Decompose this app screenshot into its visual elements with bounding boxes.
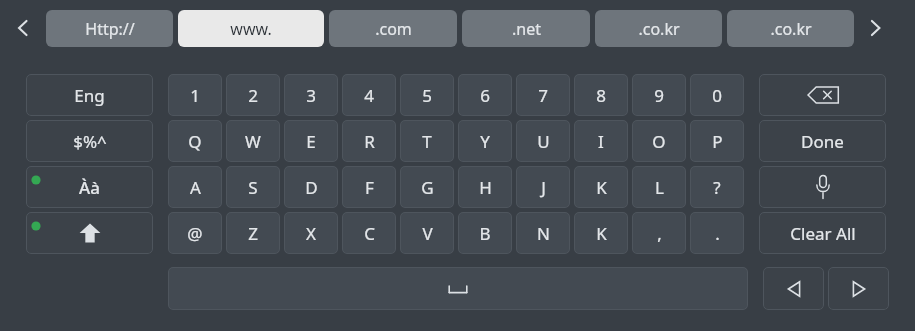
staticText: N xyxy=(537,222,550,245)
staticText: G xyxy=(421,176,434,199)
button[interactable]: 7 xyxy=(516,74,570,116)
button[interactable]: .co.kr xyxy=(727,10,854,47)
button[interactable]: Space xyxy=(168,267,748,310)
button[interactable]: Y xyxy=(458,120,512,162)
staticText: R xyxy=(364,130,375,153)
staticText: P xyxy=(712,130,723,153)
staticText: $%^ xyxy=(73,130,107,153)
button[interactable]: V xyxy=(400,212,454,254)
staticText: @ xyxy=(187,222,203,245)
staticText: A xyxy=(190,176,201,199)
staticText: X xyxy=(306,222,316,245)
button[interactable]: U xyxy=(516,120,570,162)
staticText: V xyxy=(422,222,433,245)
staticText: Y xyxy=(480,130,490,153)
button[interactable]: T xyxy=(400,120,454,162)
button[interactable]: F xyxy=(342,166,396,208)
button[interactable]: Clear All xyxy=(759,212,886,254)
button[interactable]: 9 xyxy=(632,74,686,116)
button[interactable]: I xyxy=(574,120,628,162)
button[interactable]: 8 xyxy=(574,74,628,116)
button[interactable]: Shift xyxy=(26,212,153,254)
staticText: . xyxy=(715,222,720,245)
staticText: S xyxy=(248,176,258,199)
button[interactable]: Move cursor right xyxy=(828,267,889,310)
button[interactable]: Done xyxy=(759,120,886,162)
staticText: .co.kr xyxy=(770,18,812,40)
button[interactable]: ? xyxy=(690,166,744,208)
button[interactable]: , xyxy=(632,212,686,254)
button[interactable]: .net xyxy=(462,10,590,47)
staticText: I xyxy=(598,130,604,153)
button[interactable]: L xyxy=(632,166,686,208)
staticText: Àà xyxy=(79,176,100,199)
staticText: T xyxy=(422,130,432,153)
staticText: F xyxy=(365,176,374,199)
staticText: W xyxy=(245,130,261,153)
button[interactable]: .co.kr xyxy=(595,10,722,47)
button[interactable]: Q xyxy=(168,120,222,162)
staticText: U xyxy=(537,130,550,153)
button[interactable]: . xyxy=(690,212,744,254)
staticText: 3 xyxy=(306,84,316,107)
staticText: D xyxy=(305,176,318,199)
button[interactable]: Backspace xyxy=(759,74,886,116)
button[interactable]: Àà xyxy=(26,166,153,208)
button[interactable]: D xyxy=(284,166,338,208)
button[interactable]: @ xyxy=(168,212,222,254)
staticText: E xyxy=(306,130,316,153)
staticText: 1 xyxy=(190,84,200,107)
staticText: H xyxy=(479,176,492,199)
button[interactable]: P xyxy=(690,120,744,162)
button[interactable]: 1 xyxy=(168,74,222,116)
button[interactable]: Voice input xyxy=(759,166,886,208)
button[interactable]: C xyxy=(342,212,396,254)
button[interactable]: 5 xyxy=(400,74,454,116)
staticText: Q xyxy=(188,130,202,153)
button[interactable]: Previous suggestions xyxy=(6,11,40,45)
staticText: Done xyxy=(801,130,844,153)
button[interactable]: 6 xyxy=(458,74,512,116)
staticText: B xyxy=(479,222,491,245)
staticText: 8 xyxy=(596,84,606,107)
button[interactable]: 4 xyxy=(342,74,396,116)
staticText: Http:// xyxy=(85,18,135,40)
staticText: 5 xyxy=(422,84,432,107)
button[interactable]: .com xyxy=(329,10,457,47)
button[interactable]: O xyxy=(632,120,686,162)
staticText: , xyxy=(657,222,662,245)
button[interactable]: E xyxy=(284,120,338,162)
staticText: ? xyxy=(713,176,721,199)
button[interactable]: S xyxy=(226,166,280,208)
button[interactable]: 0 xyxy=(690,74,744,116)
button[interactable]: 2 xyxy=(226,74,280,116)
button[interactable]: H xyxy=(458,166,512,208)
staticText: 2 xyxy=(248,84,258,107)
button[interactable]: J xyxy=(516,166,570,208)
button[interactable]: www. xyxy=(178,10,324,47)
staticText: .co.kr xyxy=(638,18,680,40)
button[interactable]: Http:// xyxy=(46,10,173,47)
staticText: .com xyxy=(375,18,412,40)
button[interactable]: More suggestions xyxy=(858,11,892,45)
button[interactable]: W xyxy=(226,120,280,162)
staticText: www. xyxy=(230,18,272,40)
button[interactable]: K xyxy=(574,212,628,254)
staticText: .net xyxy=(512,18,541,40)
button[interactable]: Z xyxy=(226,212,280,254)
button[interactable]: K xyxy=(574,166,628,208)
button[interactable]: A xyxy=(168,166,222,208)
staticText: L xyxy=(655,176,664,199)
staticText: 6 xyxy=(480,84,490,107)
button[interactable]: $%^ xyxy=(26,120,153,162)
button[interactable]: Eng xyxy=(26,74,153,116)
staticText: C xyxy=(364,222,375,245)
button[interactable]: 3 xyxy=(284,74,338,116)
button[interactable]: X xyxy=(284,212,338,254)
button[interactable]: Move cursor left xyxy=(763,267,824,310)
staticText: K xyxy=(596,222,607,245)
button[interactable]: R xyxy=(342,120,396,162)
button[interactable]: N xyxy=(516,212,570,254)
button[interactable]: B xyxy=(458,212,512,254)
button[interactable]: G xyxy=(400,166,454,208)
